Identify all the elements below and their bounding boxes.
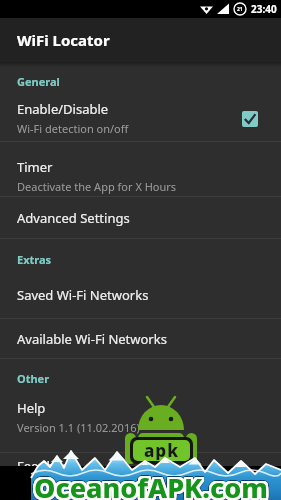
staticText: 21 <box>237 6 243 13</box>
staticText: OceanofAPK.com <box>35 469 269 500</box>
staticText: OceanofAPK.com <box>36 470 270 500</box>
staticText: OceanofAPK.com <box>36 469 270 500</box>
button[interactable]: Help <box>0 390 281 452</box>
staticText: Extras <box>17 252 52 267</box>
staticText: OceanofAPK.com <box>32 466 266 500</box>
button[interactable]: Available Wi-Fi Networks <box>0 319 281 358</box>
staticText: Available Wi-Fi Networks <box>17 330 167 348</box>
staticText: OceanofAPK.com <box>34 471 268 500</box>
staticText: apk <box>144 439 180 460</box>
staticText: OceanofAPK.com <box>32 467 266 500</box>
staticText: OceanofAPK.com <box>34 472 268 500</box>
staticText: Deactivate the App for X Hours <box>17 179 177 194</box>
staticText: OceanofAPK.com <box>37 469 271 500</box>
staticText: Help <box>17 399 46 417</box>
staticText: OceanofAPK.com <box>31 469 265 500</box>
staticText: Enable/Disable <box>17 100 109 118</box>
staticText: Timer <box>17 158 53 176</box>
staticText: OceanofAPK.com <box>36 466 270 500</box>
staticText: Other <box>17 371 50 386</box>
button[interactable]: Advanced Settings <box>0 197 281 238</box>
staticText: OceanofAPK.com <box>32 470 266 500</box>
staticText: General <box>17 74 60 89</box>
staticText: 23:40 <box>251 2 277 16</box>
staticText: OceanofAPK.com <box>32 471 266 500</box>
staticText: OceanofAPK.com <box>35 471 269 500</box>
staticText: OceanofAPK.com <box>37 467 271 500</box>
button[interactable]: Enable/Disable <box>0 90 281 141</box>
staticText: OceanofAPK.com <box>36 467 270 500</box>
staticText: OceanofAPK.com <box>36 468 270 500</box>
staticText: OceanofAPK.com <box>32 469 266 500</box>
staticText: OceanofAPK.com <box>35 468 269 500</box>
staticText: OceanofAPK.com <box>35 470 269 500</box>
staticText: OceanofAPK.com <box>33 468 267 500</box>
staticText: OceanofAPK.com <box>34 469 268 500</box>
staticText: Advanced Settings <box>17 209 130 227</box>
staticText: OceanofAPK.com <box>35 467 269 500</box>
staticText: OceanofAPK.com <box>33 467 267 500</box>
staticText: OceanofAPK.com <box>34 467 268 500</box>
staticText: Wi-Fi detection on/off <box>17 121 129 136</box>
staticText: OceanofAPK.com <box>37 471 271 500</box>
staticText: Version 1.1 (11.02.2016) <box>17 420 140 435</box>
staticText: OceanofAPK.com <box>33 469 267 500</box>
staticText: Saved Wi-Fi Networks <box>17 286 149 304</box>
button[interactable]: Timer <box>0 142 281 196</box>
staticText: Feedback <box>17 457 75 475</box>
staticText: OceanofAPK.com <box>31 467 265 500</box>
staticText: OceanofAPK.com <box>33 471 267 500</box>
button[interactable]: Saved Wi-Fi Networks <box>0 272 281 318</box>
staticText: OceanofAPK.com <box>34 468 268 500</box>
staticText: WiFi Locator <box>17 30 110 50</box>
staticText: OceanofAPK.com <box>36 472 270 500</box>
staticText: OceanofAPK.com <box>32 472 266 500</box>
staticText: OceanofAPK.com <box>32 468 266 500</box>
staticText: OceanofAPK.com <box>33 470 267 500</box>
button[interactable]: Feedback <box>0 453 281 500</box>
staticText: OceanofAPK.com <box>36 471 270 500</box>
staticText: OceanofAPK.com <box>34 470 268 500</box>
staticText: OceanofAPK.com <box>34 466 268 500</box>
staticText: OceanofAPK.com <box>31 471 265 500</box>
